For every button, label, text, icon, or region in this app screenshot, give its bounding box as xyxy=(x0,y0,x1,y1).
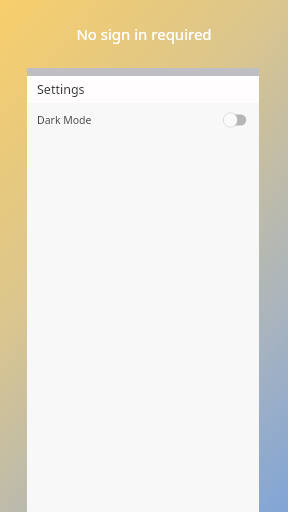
staticText: Dark Mode xyxy=(37,113,92,127)
staticText: No sign in required xyxy=(0,24,288,44)
button[interactable]: Dark Mode xyxy=(27,103,259,137)
button[interactable]: Toggle Dark Mode xyxy=(221,111,249,129)
staticText: Settings xyxy=(37,81,85,98)
